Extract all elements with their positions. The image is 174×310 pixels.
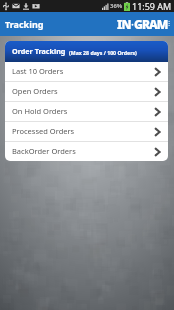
staticText: On Hold Orders <box>12 106 68 116</box>
staticText: BackOrder Orders <box>12 146 76 156</box>
staticText: Order Tracking <box>12 46 66 56</box>
button[interactable]: On Hold Orders <box>5 102 168 121</box>
button[interactable]: Processed Orders <box>5 122 168 141</box>
staticText: 36% <box>110 2 123 10</box>
staticText: GRAM <box>134 16 168 32</box>
staticText: Open Orders <box>12 86 58 96</box>
staticText: IN <box>117 16 131 32</box>
button[interactable]: Last 10 Orders <box>5 62 168 81</box>
button[interactable]: Open Orders <box>5 82 168 101</box>
button[interactable]: BackOrder Orders <box>5 142 168 161</box>
staticText: Processed Orders <box>12 126 75 136</box>
staticText: (Max 28 days / 100 Orders) <box>69 49 137 56</box>
staticText: Last 10 Orders <box>12 66 64 76</box>
staticText: Tracking <box>5 18 44 30</box>
staticText: 11:59 AM <box>132 0 172 12</box>
